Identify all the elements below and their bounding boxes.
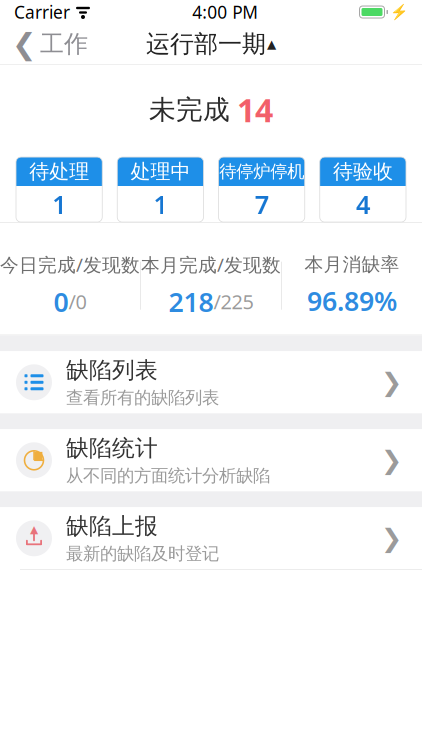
button[interactable]: ▲ bbox=[0, 507, 422, 569]
staticText: 本月完成/发现数 bbox=[141, 252, 281, 277]
button[interactable]: 缺陷列表 bbox=[0, 351, 422, 413]
button[interactable]: 待处理 bbox=[16, 157, 102, 222]
staticText: ❯ bbox=[381, 524, 402, 553]
staticText: 工作 bbox=[40, 29, 88, 59]
staticText: ▲ bbox=[267, 37, 276, 51]
staticText: 从不同的方面统计分析缺陷 bbox=[66, 465, 270, 486]
staticText: 缺陷上报 bbox=[66, 512, 158, 540]
staticText: ❯ bbox=[381, 446, 402, 475]
staticText: ⚡ bbox=[390, 4, 408, 20]
staticText: /225 bbox=[213, 288, 253, 315]
staticText: 96.89% bbox=[307, 283, 397, 318]
button[interactable]: 处理中 bbox=[117, 157, 203, 222]
staticText: 本月消缺率 bbox=[304, 253, 399, 276]
button[interactable]: 运行部一期 bbox=[136, 23, 286, 65]
staticText: ❯ bbox=[381, 368, 402, 397]
button[interactable]: 缺陷统计 bbox=[0, 429, 422, 491]
staticText: Carrier bbox=[14, 0, 70, 23]
staticText: /0 bbox=[69, 288, 87, 315]
staticText: 缺陷统计 bbox=[66, 434, 158, 462]
staticText: 最新的缺陷及时登记 bbox=[66, 543, 219, 564]
staticText: 4 bbox=[356, 187, 370, 221]
staticText: 4:00 PM bbox=[192, 0, 258, 23]
staticText: 运行部一期 bbox=[146, 29, 266, 59]
staticText: 1 bbox=[52, 187, 66, 221]
staticText: 待停炉停机 bbox=[219, 161, 304, 182]
staticText: 1 bbox=[153, 187, 167, 221]
staticText: 今日完成/发现数 bbox=[0, 252, 140, 277]
staticText: 0 bbox=[54, 284, 69, 319]
button[interactable]: 待验收 bbox=[320, 157, 406, 222]
staticText: 处理中 bbox=[130, 159, 190, 184]
staticText: 7 bbox=[255, 187, 269, 221]
staticText: ▲ bbox=[30, 523, 38, 535]
staticText: 待验收 bbox=[333, 159, 393, 184]
staticText: 14 bbox=[237, 89, 273, 131]
staticText: 缺陷列表 bbox=[66, 356, 158, 384]
staticText: 查看所有的缺陷列表 bbox=[66, 387, 219, 408]
button[interactable]: ❮ bbox=[0, 21, 100, 67]
staticText: ❮ bbox=[12, 27, 37, 61]
staticText: 待处理 bbox=[29, 159, 89, 184]
button[interactable]: 待停炉停机 bbox=[218, 157, 305, 222]
staticText: 218 bbox=[168, 284, 213, 319]
staticText: 未完成 bbox=[149, 93, 230, 126]
